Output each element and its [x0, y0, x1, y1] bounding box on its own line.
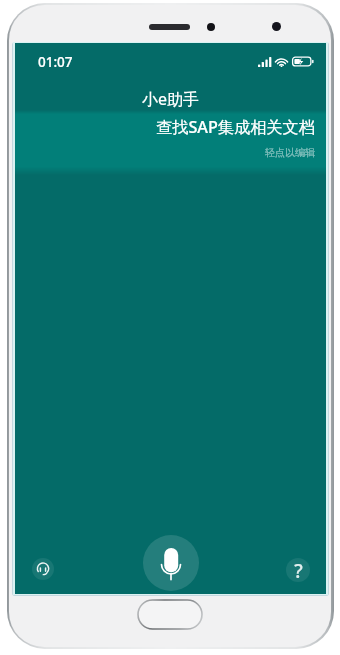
staticText: 轻点以编辑	[265, 146, 315, 159]
button[interactable]: Help	[286, 558, 310, 582]
staticText: ?	[294, 558, 303, 582]
button[interactable]: Voice input	[143, 535, 199, 591]
staticText: 小e助手	[142, 88, 200, 110]
staticText: 查找SAP集成相关文档	[156, 116, 315, 138]
button[interactable]: Customer service	[32, 558, 54, 580]
staticText: 01:07	[38, 53, 73, 71]
